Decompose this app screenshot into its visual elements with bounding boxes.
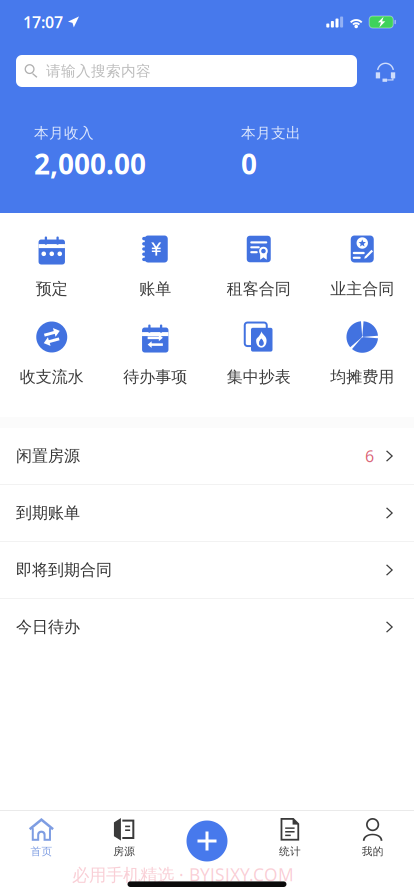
staticText: 2,000.00 xyxy=(34,145,146,182)
button[interactable]: 新增 xyxy=(181,815,233,867)
button[interactable]: 我的 xyxy=(331,819,414,863)
button[interactable]: 租客合同 xyxy=(207,233,310,301)
staticText: 账单 xyxy=(139,279,171,299)
staticText: 必用手机精选 · BYJSJXY.COM xyxy=(72,863,294,886)
staticText: 我的 xyxy=(362,845,384,858)
staticText: 6 xyxy=(365,445,374,467)
staticText: 房源 xyxy=(113,845,135,858)
button[interactable]: 账单 xyxy=(103,233,207,301)
staticText: 集中抄表 xyxy=(227,367,291,387)
button[interactable]: 均摊费用 xyxy=(310,321,414,389)
button[interactable]: 请输入搜索内容 xyxy=(16,55,357,87)
staticText: 业主合同 xyxy=(330,279,394,299)
staticText: 17:07 xyxy=(23,11,63,33)
button[interactable]: 首页 xyxy=(0,819,83,863)
staticText: 今日待办 xyxy=(16,617,80,637)
staticText: 0 xyxy=(241,145,257,182)
button[interactable]: 今日待办 xyxy=(0,599,414,656)
button[interactable]: 闲置房源 xyxy=(0,428,414,485)
staticText: 请输入搜索内容 xyxy=(46,62,151,80)
staticText: 收支流水 xyxy=(20,367,84,387)
staticText: 待办事项 xyxy=(123,367,187,387)
button[interactable]: 房源 xyxy=(83,819,166,863)
button[interactable]: 集中抄表 xyxy=(207,321,310,389)
button[interactable]: 统计 xyxy=(248,819,331,863)
button[interactable]: 即将到期合同 xyxy=(0,542,414,599)
staticText: 到期账单 xyxy=(16,503,80,523)
button[interactable]: 预定 xyxy=(0,233,103,301)
button[interactable]: 到期账单 xyxy=(0,485,414,542)
staticText: 租客合同 xyxy=(227,279,291,299)
button[interactable]: 业主合同 xyxy=(310,233,414,301)
staticText: 即将到期合同 xyxy=(16,560,112,580)
button[interactable]: 客服 xyxy=(357,55,414,87)
button[interactable]: 待办事项 xyxy=(103,321,207,389)
staticText: 本月支出 xyxy=(241,124,301,142)
button[interactable]: 收支流水 xyxy=(0,321,103,389)
staticText: 预定 xyxy=(36,279,68,299)
staticText: 统计 xyxy=(279,845,301,858)
staticText: 闲置房源 xyxy=(16,446,80,466)
staticText: 本月收入 xyxy=(34,124,94,142)
staticText: 均摊费用 xyxy=(330,367,394,387)
staticText: 首页 xyxy=(30,845,52,858)
